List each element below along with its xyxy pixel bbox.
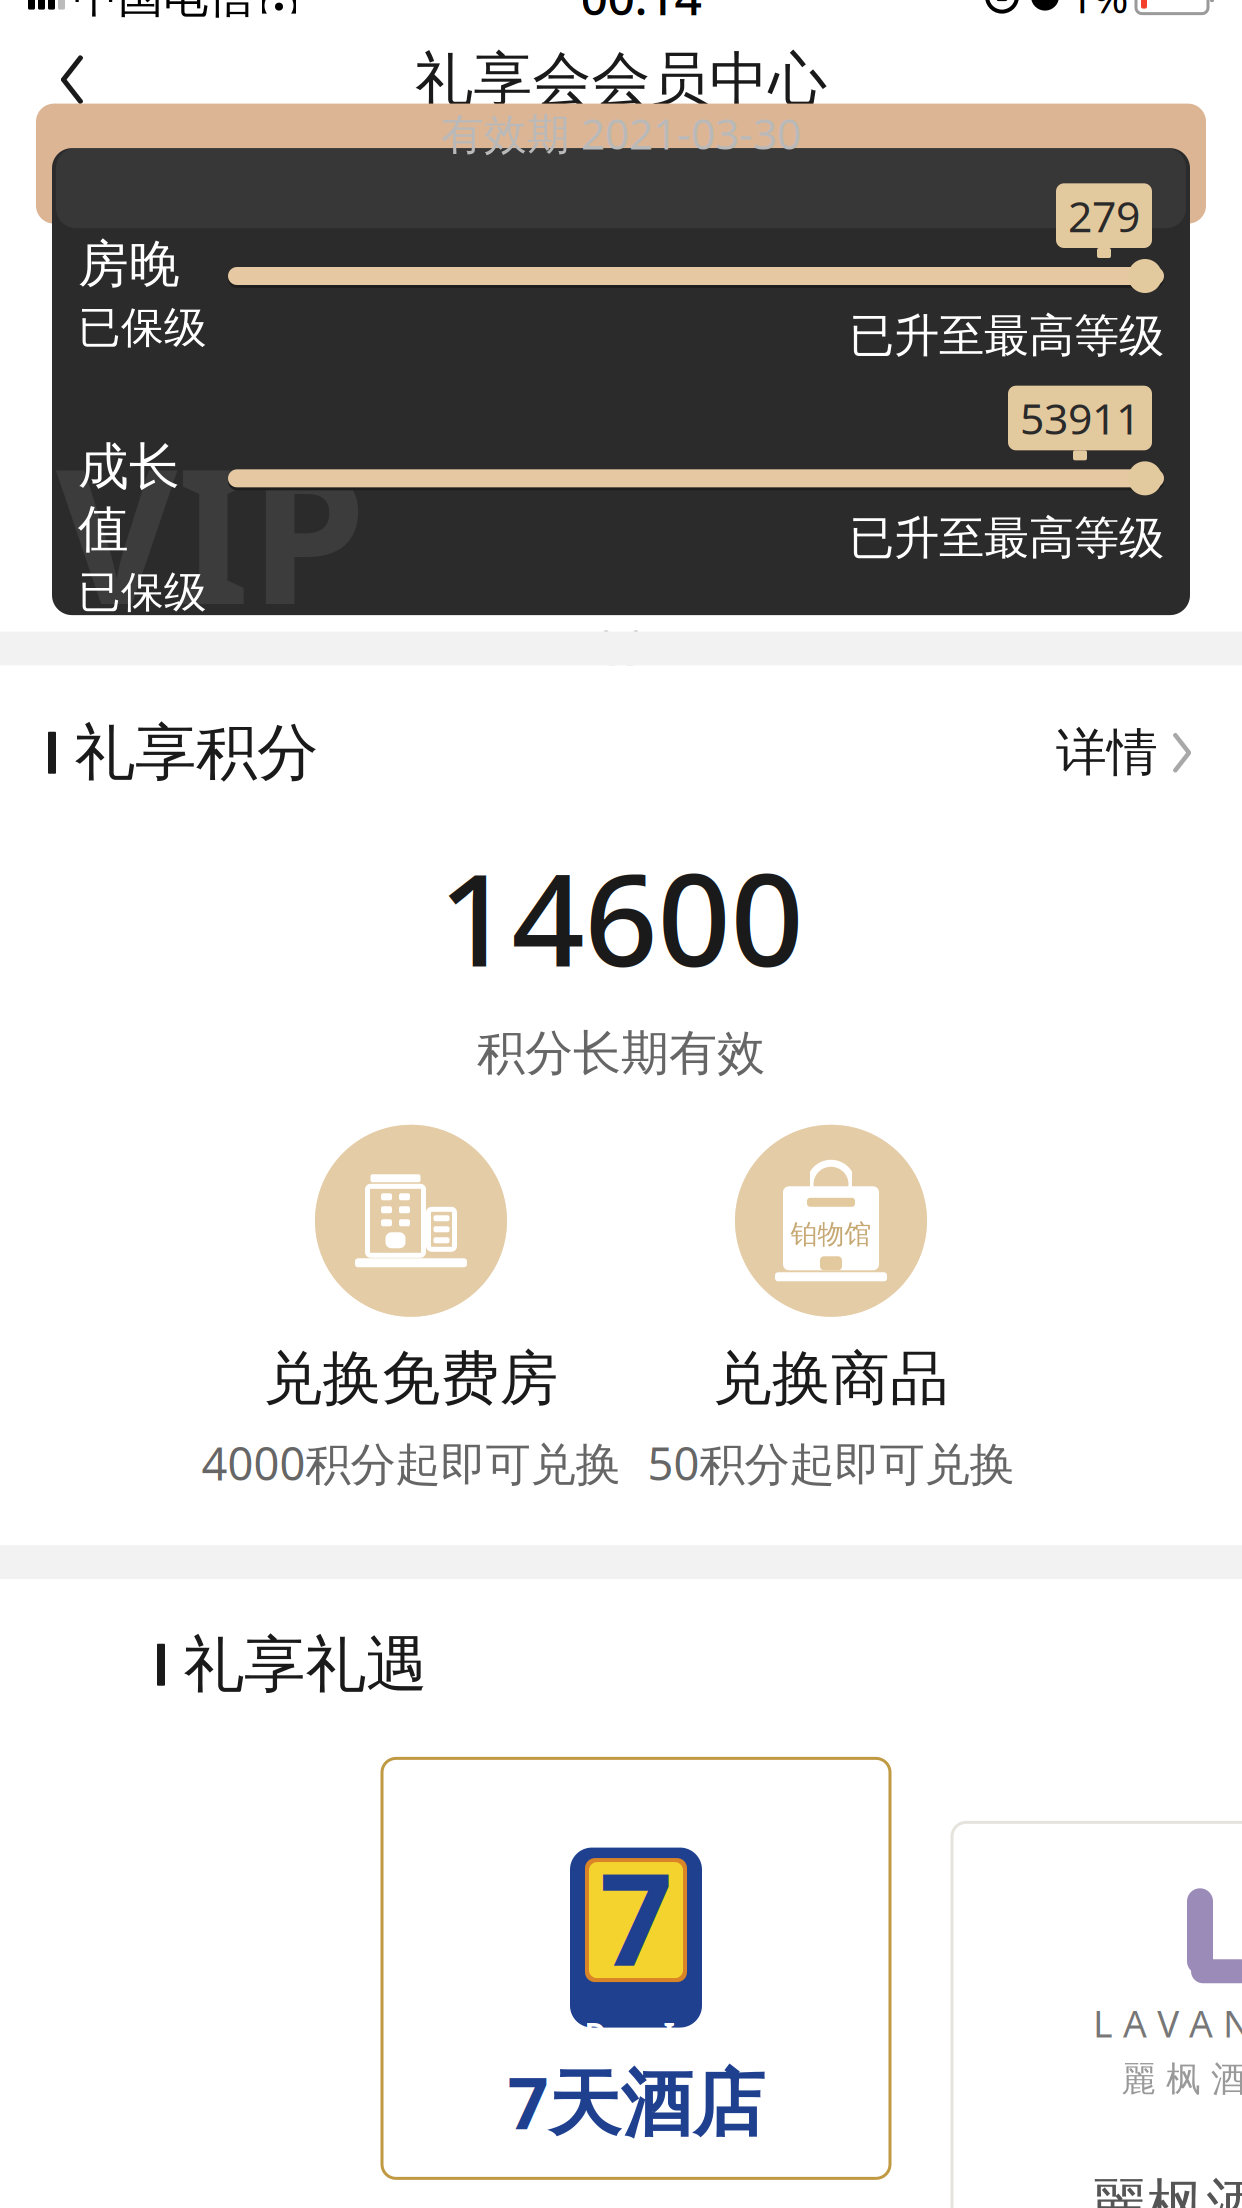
staticText: L A V A N D E [1093, 1998, 1242, 2048]
button[interactable]: 铂物馆 [621, 1125, 1041, 1493]
staticText: 7天酒店 [507, 2054, 764, 2149]
staticText: 中国电信 [73, 0, 253, 25]
staticText: 7 Days Inn [559, 2013, 712, 2052]
staticText: 已升至最高等级 [849, 308, 1164, 364]
staticText: 已保级 [78, 566, 207, 618]
staticText: 1% [1069, 0, 1128, 25]
button[interactable]: L A V A N D E [952, 1822, 1242, 2208]
staticText: 铂物馆 [790, 1218, 871, 1251]
staticText: 麗枫酒店 [1088, 2170, 1242, 2208]
staticText: 麗 枫 酒 店 [1121, 2058, 1242, 2100]
staticText: 房晚 [78, 233, 180, 295]
staticText: VIP [56, 408, 366, 656]
staticText: 53911 [1020, 390, 1140, 446]
staticText: 礼享积分 [74, 715, 318, 790]
staticText: 279 [1068, 187, 1140, 244]
staticText: 兑换商品 [713, 1343, 949, 1415]
staticText: 已升至最高等级 [849, 510, 1164, 566]
button[interactable]: 7 [382, 1758, 890, 2178]
button[interactable]: 收起 [561, 619, 681, 689]
staticText: 50积分起即可兑换 [647, 1433, 1014, 1493]
staticText: 4000积分起即可兑换 [201, 1433, 620, 1493]
button[interactable]: 兑换免费房 [201, 1125, 621, 1493]
staticText: 礼享会会员中心 [414, 44, 827, 116]
staticText: 兑换免费房 [263, 1343, 558, 1415]
staticText: 14600 [438, 832, 803, 1002]
staticText: 积分长期有效 [477, 1024, 765, 1083]
button[interactable]: 返回 [24, 32, 120, 128]
staticText: 已保级 [78, 302, 207, 354]
staticText: 7 [599, 1831, 672, 2001]
staticText: 礼享礼遇 [183, 1627, 427, 1702]
staticText: 00:14 [580, 0, 701, 28]
button[interactable]: 详情 [1032, 710, 1194, 796]
staticText: 有效期 2021-03-30 [441, 105, 801, 161]
staticText: 详情 [1056, 722, 1158, 784]
staticText: 成长值 [78, 436, 180, 560]
